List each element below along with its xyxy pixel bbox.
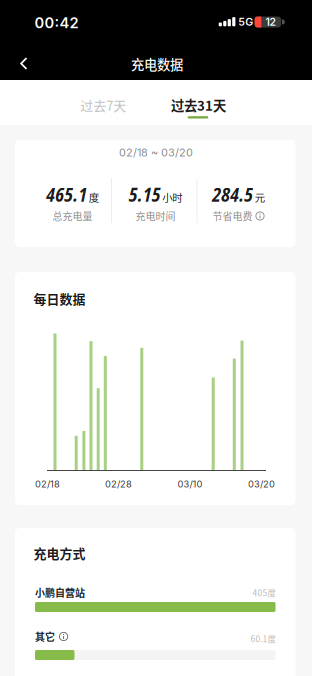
staticText: 60.1度 <box>250 632 275 645</box>
staticText: 过去7天 <box>80 95 126 114</box>
staticText: 5G <box>238 15 253 28</box>
staticText: 00:42 <box>34 14 78 32</box>
staticText: 每日数据 <box>33 289 85 308</box>
staticText: 充电数据 <box>131 54 183 74</box>
staticText: 节省电费 <box>212 209 252 223</box>
staticText: 元 <box>255 190 265 205</box>
staticText: 度 <box>89 190 99 205</box>
staticText: 其它 <box>35 629 55 644</box>
staticText: 02/18 ~ 03/20 <box>119 146 193 159</box>
staticText: 5.15 <box>129 182 161 207</box>
staticText: 过去31天 <box>171 95 226 115</box>
staticText: 12 <box>265 16 275 28</box>
staticText: 02/18 <box>35 478 60 490</box>
staticText: 465.1 <box>46 182 87 207</box>
staticText: 03/20 <box>248 478 275 490</box>
staticText: 充电方式 <box>33 543 85 562</box>
staticText: 02/28 <box>105 478 132 490</box>
staticText: 小时 <box>162 190 182 205</box>
staticText: 小鹏自营站 <box>35 585 85 600</box>
staticText: 03/10 <box>177 478 202 490</box>
staticText: 充电时间 <box>135 209 175 223</box>
staticText: 405度 <box>252 586 275 599</box>
staticText: 总充电量 <box>52 209 92 223</box>
staticText: 284.5 <box>212 182 253 207</box>
